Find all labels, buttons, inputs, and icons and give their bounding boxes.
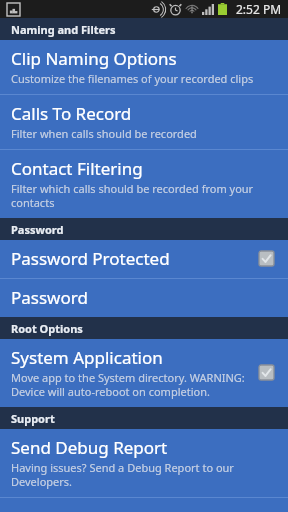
staticText: Filter when calls should be recorded bbox=[11, 126, 197, 141]
staticText: Clip Naming Options bbox=[11, 47, 177, 70]
button[interactable]: Send Debug Report bbox=[0, 429, 288, 497]
button[interactable]: Calls To Record bbox=[0, 95, 288, 149]
staticText: Calls To Record bbox=[11, 102, 132, 125]
other: Toggle Password Protected bbox=[259, 251, 278, 266]
staticText: Support bbox=[11, 411, 55, 426]
staticText: Send Debug Report bbox=[11, 436, 168, 459]
staticText: Password Protected bbox=[11, 247, 170, 270]
staticText: Password bbox=[11, 222, 64, 237]
staticText: Password bbox=[11, 286, 88, 309]
staticText: Contact Filtering bbox=[11, 157, 143, 180]
button[interactable]: Password Protected bbox=[0, 240, 288, 278]
staticText: System Application bbox=[11, 346, 163, 369]
other: Toggle System Application bbox=[259, 365, 278, 380]
button[interactable]: Contact Filtering bbox=[0, 150, 288, 218]
button[interactable]: System Application bbox=[0, 339, 288, 407]
staticText: Move app to the System directory. WARNIN… bbox=[11, 370, 251, 399]
staticText: Root Options bbox=[11, 321, 83, 336]
staticText: Filter which calls should be recorded fr… bbox=[11, 181, 278, 210]
staticText: Having issues? Send a Debug Report to ou… bbox=[11, 460, 278, 489]
button[interactable]: Clip Naming Options bbox=[0, 40, 288, 94]
button[interactable]: Password bbox=[0, 279, 288, 317]
staticText: Customize the filenames of your recorded… bbox=[11, 71, 254, 86]
staticText: 2:52 PM bbox=[236, 1, 282, 17]
staticText: Naming and Filters bbox=[11, 22, 116, 37]
